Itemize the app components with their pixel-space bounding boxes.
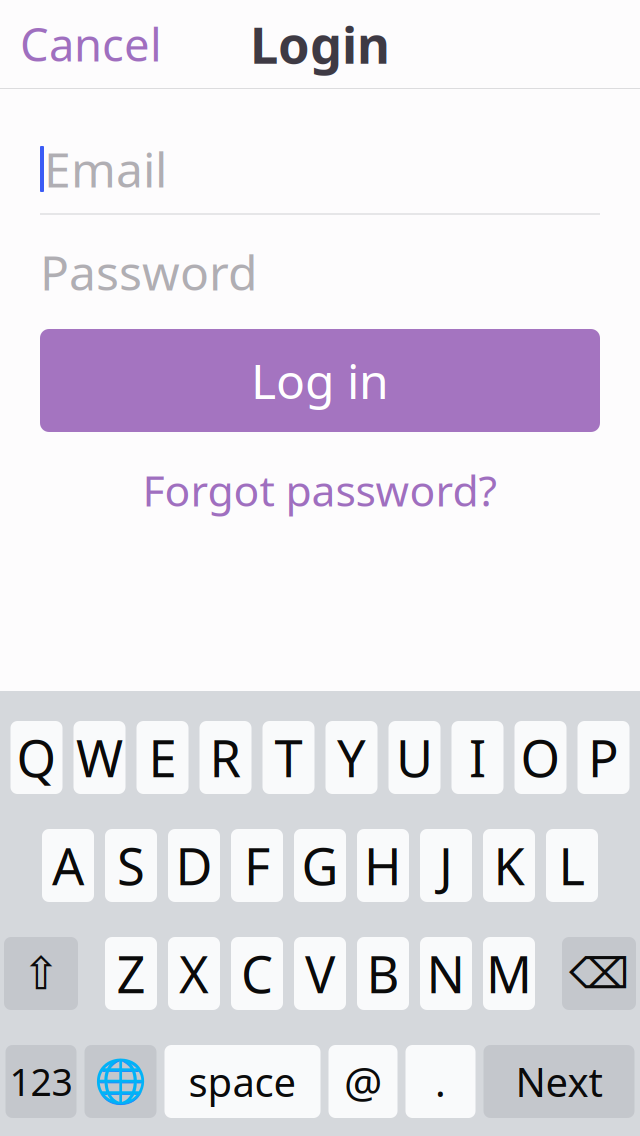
button[interactable]: K (483, 829, 535, 902)
button[interactable]: Next keyboard (84, 1045, 156, 1118)
staticText: Next (515, 1055, 602, 1108)
staticText: Forgot password? (142, 462, 497, 518)
button[interactable]: Shift (4, 937, 78, 1010)
staticText: Login (250, 10, 390, 78)
button[interactable]: I (451, 721, 503, 794)
staticText: O (520, 724, 560, 791)
button[interactable]: 123 (5, 1045, 76, 1118)
button[interactable]: L (546, 829, 598, 902)
button[interactable]: Forgot password? (40, 460, 600, 520)
staticText: A (52, 832, 84, 899)
button[interactable]: W (73, 721, 125, 794)
staticText: Q (16, 724, 56, 791)
button[interactable]: P (577, 721, 629, 794)
staticText: @ (344, 1053, 382, 1110)
button[interactable]: S (105, 829, 157, 902)
button[interactable]: R (199, 721, 251, 794)
staticText: B (366, 940, 399, 1007)
staticText: X (179, 940, 209, 1007)
button[interactable]: Y (325, 721, 377, 794)
staticText: M (486, 940, 532, 1007)
button[interactable]: F (231, 829, 283, 902)
button[interactable]: D (168, 829, 220, 902)
staticText: R (209, 724, 241, 791)
staticText: H (364, 832, 402, 899)
staticText: S (117, 832, 145, 899)
button[interactable]: U (388, 721, 440, 794)
button[interactable]: G (294, 829, 346, 902)
staticText: 123 (9, 1057, 72, 1106)
button[interactable]: @ (328, 1045, 397, 1118)
button[interactable]: space (164, 1045, 320, 1118)
staticText: . (435, 1055, 446, 1108)
button[interactable]: X (168, 937, 220, 1010)
staticText: G (301, 832, 338, 899)
staticText: ⇧ (22, 948, 60, 999)
staticText: Cancel (20, 14, 162, 74)
button[interactable]: Q (10, 721, 62, 794)
button[interactable]: Cancel (20, 14, 162, 74)
staticText: ⌫ (569, 949, 629, 998)
staticText: C (241, 940, 273, 1007)
button[interactable]: O (514, 721, 566, 794)
staticText: K (493, 832, 524, 899)
staticText: Email (44, 137, 167, 201)
staticText: L (558, 832, 585, 899)
staticText: J (439, 832, 453, 899)
button[interactable]: A (42, 829, 94, 902)
staticText: P (588, 724, 619, 791)
button[interactable]: Next (483, 1045, 634, 1118)
staticText: 🌐 (94, 1057, 147, 1106)
staticText: F (244, 832, 270, 899)
staticText: W (76, 724, 123, 791)
staticText: D (175, 832, 212, 899)
staticText: Password (40, 240, 258, 304)
button[interactable]: Log in (40, 329, 600, 432)
button[interactable]: T (262, 721, 314, 794)
staticText: Log in (251, 349, 389, 412)
button[interactable]: V (294, 937, 346, 1010)
button[interactable]: B (357, 937, 409, 1010)
staticText: V (305, 940, 335, 1007)
staticText: T (274, 724, 302, 791)
staticText: Y (337, 724, 366, 791)
staticText: E (148, 724, 176, 791)
staticText: space (188, 1055, 296, 1108)
button[interactable]: N (420, 937, 472, 1010)
button[interactable]: Delete (562, 937, 636, 1010)
button[interactable]: E (136, 721, 188, 794)
staticText: U (396, 724, 433, 791)
button[interactable]: H (357, 829, 409, 902)
button[interactable]: J (420, 829, 472, 902)
staticText: Z (116, 940, 145, 1007)
button[interactable]: . (405, 1045, 475, 1118)
staticText: I (469, 724, 486, 791)
button[interactable]: M (483, 937, 535, 1010)
staticText: N (426, 940, 465, 1007)
button[interactable]: C (231, 937, 283, 1010)
button[interactable]: Z (105, 937, 157, 1010)
